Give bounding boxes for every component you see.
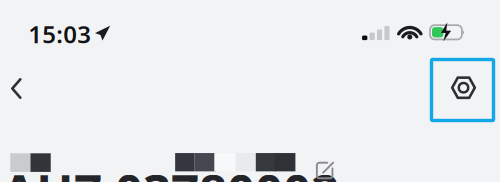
staticText: AH7 03780002: [2, 159, 339, 182]
button[interactable]: Edit: [310, 155, 340, 182]
button[interactable]: Settings: [441, 66, 485, 110]
button[interactable]: Back: [0, 66, 38, 110]
staticText: 15:03: [28, 18, 91, 50]
